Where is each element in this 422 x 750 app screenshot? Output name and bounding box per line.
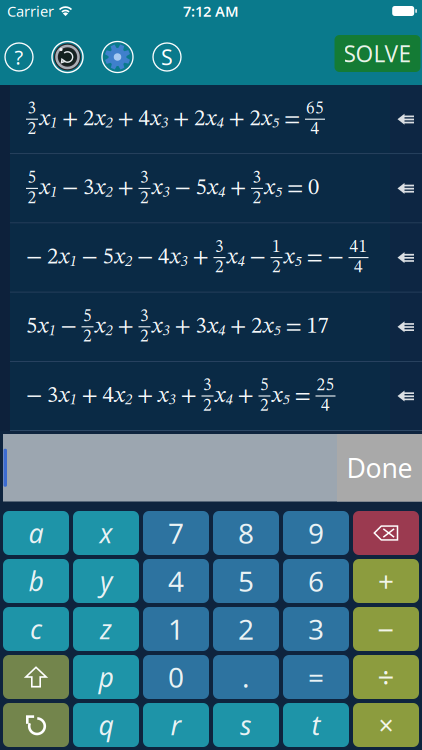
- button[interactable]: 3: [283, 607, 349, 651]
- button[interactable]: [390, 154, 422, 223]
- staticText: r: [170, 707, 181, 743]
- staticText: +: [180, 385, 196, 407]
- button[interactable]: 4: [143, 559, 209, 603]
- staticText: 3: [203, 377, 212, 394]
- staticText: +: [173, 108, 189, 131]
- button[interactable]: 3: [10, 85, 390, 153]
- staticText: 4: [218, 324, 225, 339]
- button[interactable]: z: [73, 607, 139, 651]
- staticText: x: [263, 315, 273, 338]
- staticText: 4: [321, 398, 330, 415]
- button[interactable]: 1: [143, 607, 209, 651]
- button[interactable]: ×: [353, 703, 419, 747]
- button[interactable]: p: [73, 655, 139, 699]
- button[interactable]: a: [3, 511, 69, 555]
- staticText: 2: [252, 190, 261, 207]
- staticText: +: [230, 315, 246, 338]
- button[interactable]: −: [10, 362, 390, 430]
- staticText: 3: [215, 239, 224, 256]
- button[interactable]: s: [213, 703, 279, 747]
- staticText: 3: [162, 186, 169, 200]
- staticText: −: [174, 177, 190, 200]
- staticText: −: [249, 246, 265, 269]
- staticText: −: [377, 609, 394, 648]
- button[interactable]: c: [3, 607, 69, 651]
- staticText: x: [158, 385, 168, 407]
- button[interactable]: [353, 511, 419, 555]
- staticText: x: [215, 385, 225, 407]
- button[interactable]: +: [353, 559, 419, 603]
- button[interactable]: 2: [213, 607, 279, 651]
- staticText: =: [284, 108, 300, 131]
- staticText: 5: [238, 562, 254, 600]
- staticText: 4: [237, 255, 244, 269]
- button[interactable]: [390, 293, 422, 361]
- staticText: p: [98, 659, 113, 695]
- staticText: .: [242, 658, 250, 696]
- staticText: 3: [140, 169, 149, 187]
- button[interactable]: t: [283, 703, 349, 747]
- staticText: 4: [218, 186, 225, 200]
- button[interactable]: [390, 223, 422, 292]
- button[interactable]: 6: [283, 559, 349, 603]
- button[interactable]: ?: [5, 43, 33, 71]
- button[interactable]: 5: [213, 559, 279, 603]
- staticText: 1: [50, 186, 57, 200]
- button[interactable]: x: [73, 511, 139, 555]
- staticText: 8: [238, 514, 254, 552]
- staticText: 2: [260, 398, 269, 415]
- staticText: +: [81, 385, 97, 407]
- button[interactable]: −: [353, 607, 419, 651]
- button[interactable]: 7: [143, 511, 209, 555]
- button[interactable]: S: [153, 43, 181, 71]
- staticText: 41: [349, 239, 367, 256]
- staticText: 4: [102, 385, 113, 407]
- button[interactable]: 8: [213, 511, 279, 555]
- button[interactable]: [390, 362, 422, 430]
- staticText: 5: [294, 255, 301, 269]
- staticText: S: [161, 43, 173, 71]
- staticText: 3: [308, 610, 324, 648]
- staticText: x: [114, 246, 124, 269]
- button[interactable]: −: [10, 223, 390, 292]
- staticText: 2: [251, 315, 262, 338]
- button[interactable]: [52, 41, 83, 72]
- button[interactable]: 5: [10, 293, 390, 361]
- staticText: 5: [26, 315, 37, 338]
- staticText: x: [152, 177, 162, 200]
- staticText: x: [39, 108, 49, 131]
- button[interactable]: 0: [143, 655, 209, 699]
- staticText: 4: [158, 246, 169, 269]
- button[interactable]: r: [143, 703, 209, 747]
- button[interactable]: [3, 655, 69, 699]
- staticText: x: [207, 315, 217, 338]
- staticText: +: [137, 385, 153, 407]
- button[interactable]: y: [73, 559, 139, 603]
- staticText: 2: [105, 186, 112, 200]
- button[interactable]: [3, 703, 69, 747]
- button[interactable]: ÷: [353, 655, 419, 699]
- button[interactable]: [390, 85, 422, 153]
- staticText: 2: [238, 610, 254, 648]
- staticText: +: [174, 315, 190, 338]
- button[interactable]: [102, 41, 133, 72]
- staticText: x: [95, 315, 105, 338]
- staticText: 2: [83, 108, 94, 131]
- staticText: 0: [308, 177, 319, 200]
- button[interactable]: 5: [10, 154, 390, 223]
- button[interactable]: b: [3, 559, 69, 603]
- button[interactable]: q: [73, 703, 139, 747]
- button[interactable]: =: [283, 655, 349, 699]
- staticText: 5: [272, 116, 279, 131]
- button[interactable]: Done: [337, 434, 422, 501]
- staticText: x: [39, 177, 49, 200]
- staticText: 2: [47, 246, 58, 269]
- button[interactable]: .: [213, 655, 279, 699]
- staticText: −: [26, 385, 42, 407]
- staticText: 2: [105, 324, 112, 339]
- button[interactable]: 9: [283, 511, 349, 555]
- staticText: 5: [195, 177, 206, 200]
- staticText: x: [114, 385, 124, 407]
- button[interactable]: SOLVE: [334, 35, 422, 72]
- staticText: x: [95, 108, 105, 131]
